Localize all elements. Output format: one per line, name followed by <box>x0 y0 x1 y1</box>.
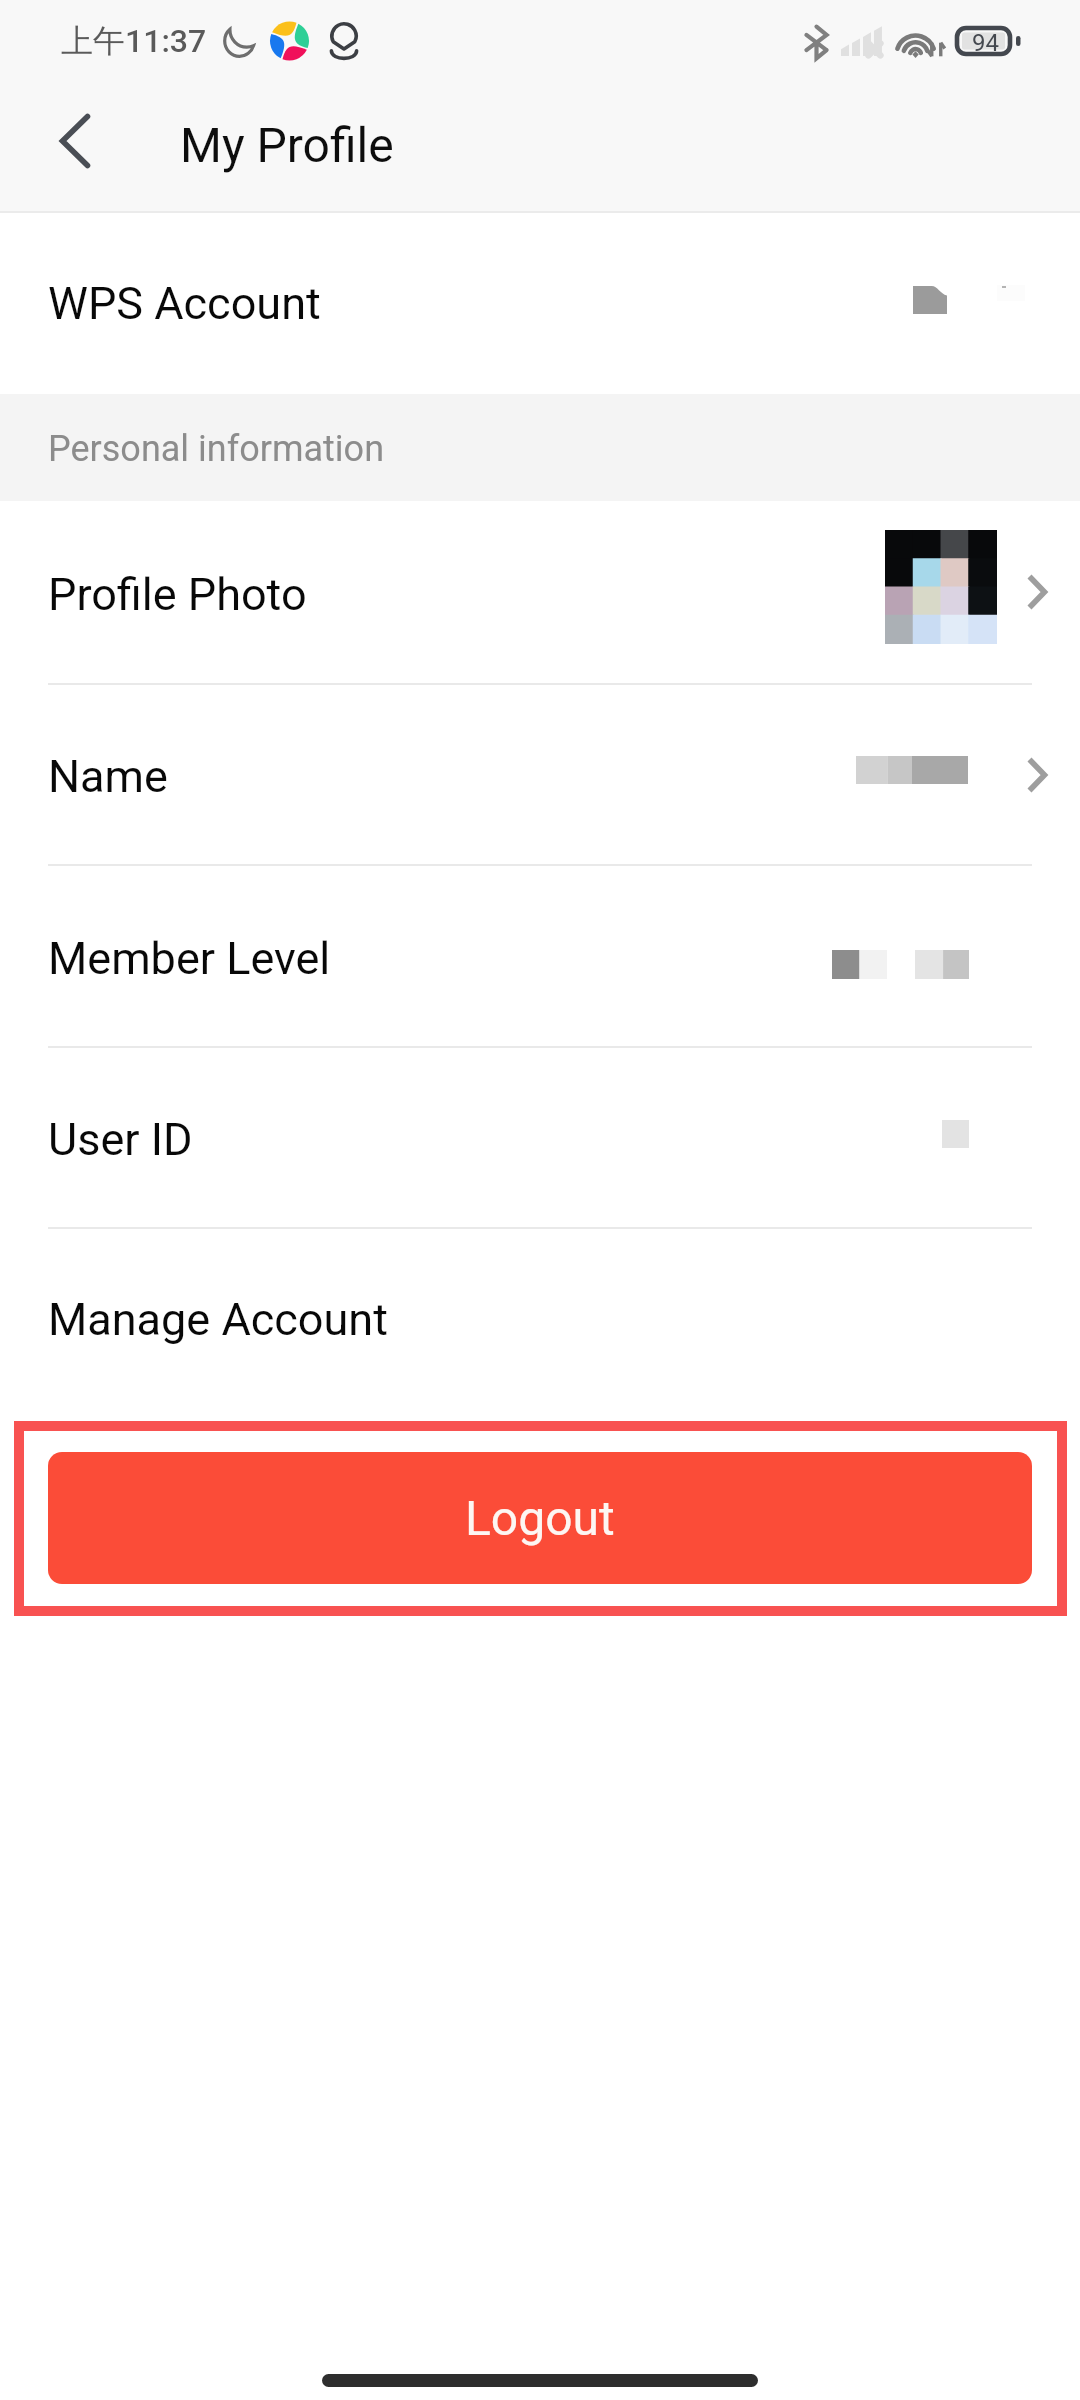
staticText: My Profile <box>180 117 394 173</box>
staticText: WPS Account <box>48 277 321 330</box>
button[interactable]: Name <box>0 685 1080 864</box>
button[interactable]: Manage Account <box>0 1229 1080 1406</box>
button[interactable]: Member Level <box>0 866 1080 1046</box>
staticText: Profile Photo <box>48 568 307 621</box>
staticText: User ID <box>48 1113 193 1166</box>
button[interactable]: User ID <box>0 1048 1080 1227</box>
button[interactable]: Logout <box>48 1452 1032 1584</box>
staticText: 94 <box>972 29 999 57</box>
staticText: Manage Account <box>48 1293 388 1346</box>
staticText: Member Level <box>48 932 331 985</box>
button[interactable]: Back <box>31 95 119 187</box>
staticText: Personal information <box>48 428 385 470</box>
button[interactable]: Profile Photo <box>0 501 1080 683</box>
staticText: Logout <box>465 1490 615 1546</box>
staticText: Name <box>48 750 168 803</box>
button[interactable]: WPS Account <box>0 213 1080 394</box>
other: Open <box>1027 574 1047 610</box>
staticText: 上午11:37 <box>61 21 207 61</box>
other: Open <box>1027 757 1047 793</box>
